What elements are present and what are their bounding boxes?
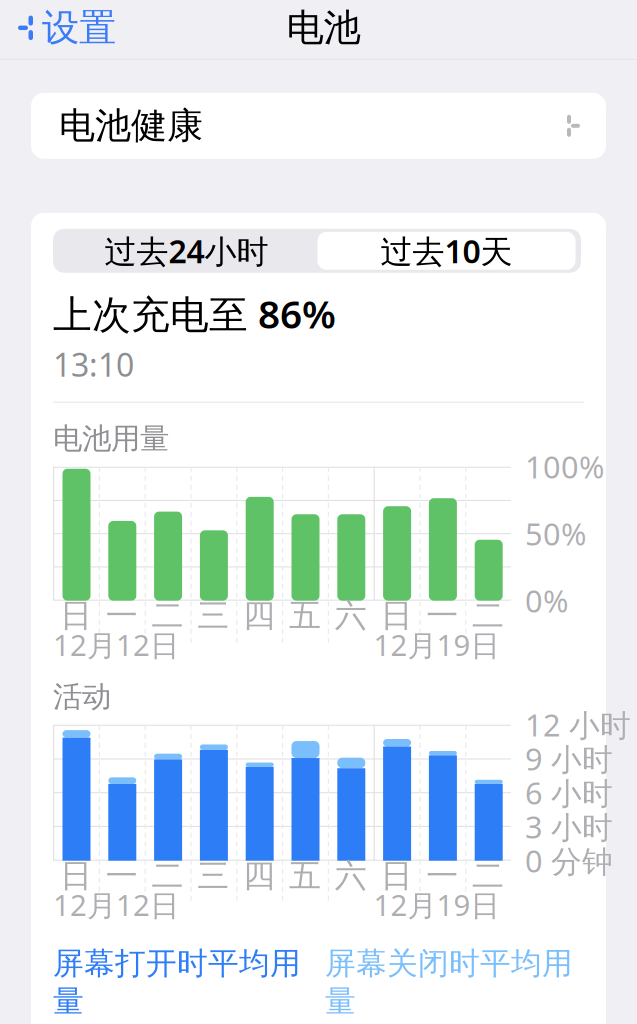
staticText: 四 xyxy=(243,596,275,635)
staticText: 三 xyxy=(197,856,229,895)
staticText: 屏幕打开时平均用量 xyxy=(53,945,301,1020)
staticText: 12月19日 xyxy=(374,625,500,664)
staticText: 五 xyxy=(289,856,321,895)
staticText: 50% xyxy=(525,513,586,554)
staticText: 五 xyxy=(289,596,321,635)
staticText: 一 xyxy=(106,596,138,635)
staticText: 日 xyxy=(60,596,92,635)
staticText: 电池健康 xyxy=(59,104,203,148)
staticText: 6 小时 xyxy=(525,772,613,813)
staticText: 一 xyxy=(426,856,458,895)
staticText: 六 xyxy=(335,856,367,895)
staticText: 屏幕关闭时平均用量 xyxy=(325,945,573,1020)
staticText: 13:10 xyxy=(53,343,134,386)
staticText: 12月12日 xyxy=(53,885,179,924)
staticText: 二 xyxy=(472,596,504,635)
staticText: 二 xyxy=(151,856,183,895)
staticText: 日 xyxy=(380,856,412,895)
staticText: 电池用量 xyxy=(53,421,169,457)
staticText: 一 xyxy=(426,596,458,635)
staticText: 12月19日 xyxy=(374,885,500,924)
staticText: 三 xyxy=(197,596,229,635)
staticText: 活动 xyxy=(53,679,111,715)
staticText: 四 xyxy=(243,856,275,895)
staticText: 设置 xyxy=(42,5,116,51)
staticText: 日 xyxy=(380,596,412,635)
staticText: 12 小时 xyxy=(525,704,631,745)
staticText: 过去24小时 xyxy=(104,230,268,272)
staticText: 3 小时 xyxy=(525,806,613,847)
staticText: 二 xyxy=(472,856,504,895)
staticText: 100% xyxy=(525,446,604,487)
staticText: 上次充电至 86% xyxy=(53,288,336,339)
button[interactable]: 设置 xyxy=(0,0,126,59)
staticText: 一 xyxy=(106,856,138,895)
staticText: 9 小时 xyxy=(525,738,613,779)
staticText: 二 xyxy=(151,596,183,635)
staticText: 0 分钟 xyxy=(525,840,613,881)
staticText: 电池 xyxy=(286,5,360,51)
button[interactable]: 电池健康 xyxy=(31,93,606,159)
staticText: 日 xyxy=(60,856,92,895)
staticText: 12月12日 xyxy=(53,625,179,664)
staticText: 0% xyxy=(525,580,568,621)
button[interactable]: 过去10天 xyxy=(317,232,575,270)
button[interactable]: 过去24小时 xyxy=(55,229,317,273)
staticText: 六 xyxy=(335,596,367,635)
staticText: 过去10天 xyxy=(380,230,512,272)
